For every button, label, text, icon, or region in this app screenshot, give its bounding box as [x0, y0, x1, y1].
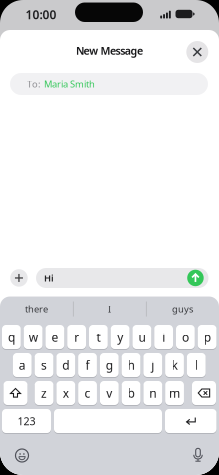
button[interactable]: s — [35, 353, 53, 378]
staticText: 10:00 — [25, 6, 56, 22]
staticText: To: — [27, 78, 41, 90]
button[interactable]: Return — [165, 409, 216, 434]
button[interactable]: f — [78, 353, 97, 378]
button[interactable]: g — [100, 353, 119, 378]
button[interactable]: d — [56, 353, 75, 378]
staticText: n — [149, 385, 156, 401]
staticText: Maria Smith — [44, 78, 95, 90]
button[interactable]: j — [143, 353, 162, 378]
button[interactable]: l — [187, 353, 206, 378]
staticText: i — [162, 329, 165, 345]
button[interactable]: u — [132, 325, 151, 350]
staticText: o — [182, 329, 189, 345]
staticText: p — [204, 329, 211, 345]
button[interactable]: i — [154, 325, 173, 350]
button[interactable]: z — [35, 381, 53, 406]
button[interactable]: a — [13, 353, 32, 378]
button[interactable]: o — [176, 325, 195, 350]
staticText: guys — [172, 303, 193, 315]
button[interactable]: Hi — [36, 268, 208, 288]
button[interactable]: Space — [54, 409, 162, 434]
button[interactable]: t — [89, 325, 108, 350]
staticText: y — [117, 329, 123, 345]
button[interactable]: n — [143, 381, 162, 406]
button[interactable]: q — [2, 325, 21, 350]
staticText: k — [171, 357, 177, 373]
staticText: b — [128, 385, 135, 401]
staticText: d — [62, 357, 69, 373]
staticText: m — [169, 385, 180, 401]
staticText: c — [85, 385, 91, 401]
button[interactable]: guys — [147, 301, 217, 317]
button[interactable]: p — [198, 325, 217, 350]
button[interactable]: c — [78, 381, 97, 406]
staticText: h — [127, 357, 134, 373]
staticText: New Message — [76, 43, 143, 58]
button[interactable]: h — [122, 353, 140, 378]
button[interactable]: m — [165, 381, 184, 406]
button[interactable]: To: — [10, 73, 208, 95]
button[interactable]: Dictate — [187, 444, 209, 466]
staticText: I — [108, 303, 111, 315]
button[interactable]: Emoji — [11, 444, 33, 466]
button[interactable]: v — [100, 381, 119, 406]
staticText: l — [195, 357, 198, 373]
button[interactable]: w — [24, 325, 43, 350]
staticText: s — [41, 357, 47, 373]
staticText: f — [85, 357, 89, 373]
staticText: v — [106, 385, 112, 401]
button[interactable]: I — [74, 301, 144, 317]
button[interactable]: Close — [186, 41, 208, 63]
button[interactable]: Shift — [3, 381, 27, 406]
button[interactable]: Numbers — [2, 409, 51, 434]
button[interactable]: r — [67, 325, 86, 350]
button[interactable]: there — [1, 301, 71, 317]
staticText: z — [41, 385, 47, 401]
staticText: t — [96, 329, 100, 345]
staticText: e — [51, 329, 58, 345]
button[interactable]: More — [10, 269, 28, 287]
staticText: there — [25, 303, 48, 315]
staticText: u — [138, 329, 145, 345]
button[interactable]: b — [122, 381, 140, 406]
staticText: j — [151, 357, 154, 373]
staticText: w — [29, 329, 38, 345]
staticText: x — [63, 385, 69, 401]
staticText: a — [19, 357, 26, 373]
staticText: q — [8, 329, 15, 345]
staticText: r — [74, 329, 79, 345]
button[interactable]: Delete — [192, 381, 216, 406]
button[interactable]: y — [111, 325, 130, 350]
staticText: g — [106, 357, 113, 373]
button[interactable]: x — [56, 381, 75, 406]
staticText: 123 — [17, 414, 35, 428]
staticText: Hi — [44, 272, 54, 284]
button[interactable]: k — [165, 353, 184, 378]
button[interactable]: e — [45, 325, 64, 350]
button[interactable]: Send — [187, 270, 204, 286]
